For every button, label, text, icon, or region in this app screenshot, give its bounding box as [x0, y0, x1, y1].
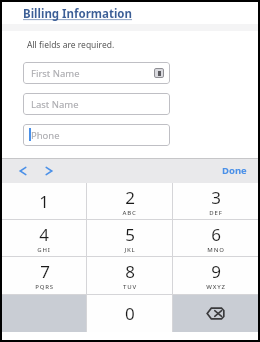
button[interactable]: Delete — [173, 295, 258, 332]
button[interactable]: 3 — [173, 183, 258, 219]
staticText: MNO — [207, 246, 225, 254]
staticText: 8 — [125, 260, 135, 283]
staticText: Last Name — [31, 98, 79, 111]
staticText: All fields are required. — [27, 39, 115, 51]
staticText: PQRS — [35, 283, 54, 291]
button[interactable]: 5 — [87, 220, 172, 256]
staticText: GHI — [37, 246, 51, 254]
button[interactable]: Last Name — [23, 93, 170, 115]
staticText: ABC — [122, 209, 137, 217]
button[interactable]: Previous field — [12, 160, 34, 182]
button[interactable]: First Name — [23, 62, 170, 84]
staticText: DEF — [209, 209, 223, 217]
staticText: Phone — [31, 129, 60, 142]
button[interactable]: 8 — [87, 257, 172, 294]
button[interactable]: 7 — [2, 257, 86, 294]
staticText: WXYZ — [206, 283, 226, 291]
staticText: TUV — [123, 283, 137, 291]
staticText: 3 — [211, 186, 221, 209]
button[interactable]: 4 — [2, 220, 86, 256]
button[interactable]: 2 — [87, 183, 172, 219]
staticText: Billing Information — [23, 6, 133, 22]
button[interactable]: 9 — [173, 257, 258, 294]
button[interactable]: 1 — [2, 183, 86, 219]
button[interactable]: Phone — [23, 124, 170, 146]
staticText: 7 — [40, 260, 50, 283]
button[interactable]: Autofill contact — [154, 68, 164, 78]
staticText: First Name — [31, 67, 80, 80]
button[interactable]: 6 — [173, 220, 258, 256]
button[interactable]: Done — [219, 161, 250, 180]
staticText: 6 — [211, 223, 221, 246]
staticText: 2 — [125, 186, 135, 209]
staticText: 5 — [125, 223, 135, 246]
staticText: 4 — [39, 223, 49, 246]
staticText: 9 — [211, 260, 221, 283]
staticText: 1 — [39, 190, 49, 213]
button[interactable]: 0 — [87, 295, 172, 332]
button[interactable]: Next field — [38, 160, 60, 182]
staticText: JKL — [124, 246, 136, 254]
staticText: 0 — [125, 302, 135, 325]
staticText: Done — [222, 164, 247, 177]
